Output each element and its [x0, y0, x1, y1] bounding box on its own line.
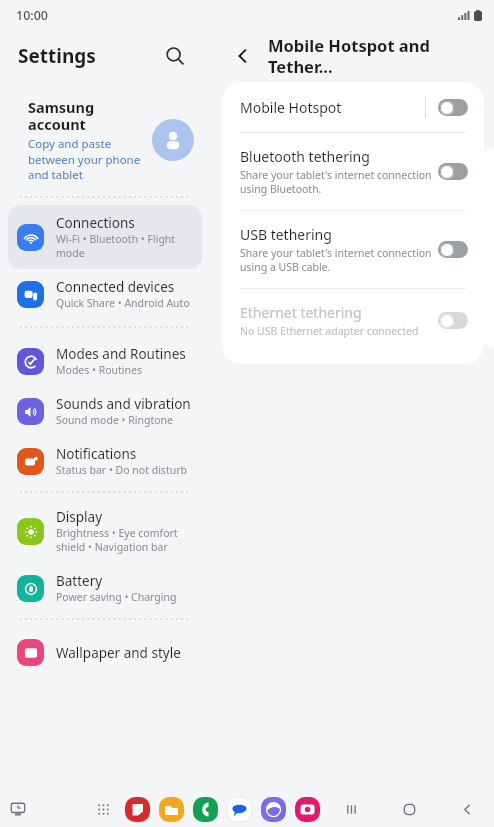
- button[interactable]: Toggle: [438, 99, 468, 116]
- staticText: Settings: [18, 43, 96, 69]
- staticText: Wallpaper and style: [56, 644, 181, 662]
- staticText: Share your tablet's internet connection …: [240, 246, 438, 274]
- button[interactable]: Apps: [90, 796, 116, 822]
- button[interactable]: camera: [294, 796, 320, 822]
- staticText: 10:00: [16, 7, 49, 24]
- button[interactable]: Toggle: [438, 163, 468, 180]
- button[interactable]: Modes and Routines: [8, 336, 202, 386]
- button[interactable]: Samsung account: [0, 82, 210, 197]
- staticText: Connections: [56, 214, 135, 232]
- staticText: Modes • Routines: [56, 363, 143, 377]
- button[interactable]: messages: [226, 796, 252, 822]
- staticText: Samsung account: [28, 97, 144, 134]
- button[interactable]: Toggle: [438, 241, 468, 258]
- staticText: Copy and paste between your phone and ta…: [28, 136, 144, 182]
- button[interactable]: phone: [192, 796, 218, 822]
- button[interactable]: Search: [158, 39, 192, 73]
- button[interactable]: Bluetooth tethering: [222, 133, 484, 210]
- button[interactable]: Mobile Hotspot: [222, 82, 484, 132]
- staticText: Ethernet tethering: [240, 303, 362, 322]
- staticText: USB tethering: [240, 225, 332, 244]
- staticText: No USB Ethernet adapter connected: [240, 324, 419, 338]
- button[interactable]: Back: [226, 39, 260, 73]
- staticText: Brightness • Eye comfort shield • Naviga…: [56, 526, 194, 554]
- button[interactable]: files: [158, 796, 184, 822]
- staticText: Wi-Fi • Bluetooth • Flight mode: [56, 232, 194, 260]
- button[interactable]: Recents: [338, 796, 364, 822]
- button[interactable]: Toggle: [438, 312, 468, 329]
- button[interactable]: Connections: [8, 205, 202, 269]
- staticText: Sounds and vibration: [56, 395, 191, 413]
- staticText: Connected devices: [56, 278, 175, 296]
- button[interactable]: Display: [8, 499, 202, 563]
- staticText: Sound mode • Ringtone: [56, 413, 173, 427]
- staticText: Power saving • Charging: [56, 590, 177, 604]
- button[interactable]: Ethernet tethering: [222, 289, 484, 352]
- button[interactable]: Notifications: [8, 436, 202, 486]
- button[interactable]: Home: [396, 796, 422, 822]
- staticText: Battery: [56, 572, 103, 590]
- staticText: Notifications: [56, 445, 137, 463]
- staticText: Mobile Hotspot: [240, 98, 342, 117]
- button[interactable]: notes: [124, 796, 150, 822]
- staticText: Display: [56, 508, 103, 526]
- staticText: Status bar • Do not disturb: [56, 463, 187, 477]
- staticText: Mobile Hotspot and Tether...: [268, 34, 494, 78]
- button[interactable]: Battery: [8, 563, 202, 613]
- button[interactable]: Sounds and vibration: [8, 386, 202, 436]
- staticText: Modes and Routines: [56, 345, 186, 363]
- staticText: Quick Share • Android Auto: [56, 296, 190, 310]
- button[interactable]: browser: [260, 796, 286, 822]
- button[interactable]: Recent screen: [4, 795, 32, 823]
- staticText: Share your tablet's internet connection …: [240, 168, 438, 196]
- button[interactable]: Back: [454, 796, 480, 822]
- button[interactable]: Wallpaper and style: [8, 630, 202, 675]
- button[interactable]: Connected devices: [8, 269, 202, 319]
- button[interactable]: USB tethering: [222, 211, 484, 288]
- staticText: Bluetooth tethering: [240, 147, 370, 166]
